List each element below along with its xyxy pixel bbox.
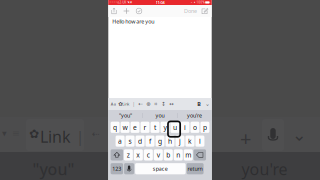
staticText: l: [199, 137, 201, 146]
staticText: ✿: [118, 101, 122, 107]
staticText: +: [240, 125, 251, 152]
staticText: q: [113, 123, 117, 132]
button[interactable]: Add attachment: [122, 6, 131, 15]
staticText: ⌄: [205, 101, 209, 107]
staticText: ✿: [29, 127, 39, 141]
button[interactable]: Shift: [111, 149, 123, 160]
staticText: ▼: [130, 1, 132, 4]
staticText: b: [166, 150, 170, 159]
staticText: j: [179, 137, 181, 146]
button[interactable]: g: [155, 135, 164, 147]
staticText: 11:04: [155, 0, 164, 5]
button[interactable]: y: [160, 122, 169, 133]
staticText: "you": [32, 158, 74, 180]
staticText: ⇠: [92, 128, 100, 139]
button[interactable]: e: [131, 122, 140, 133]
staticText: c: [147, 150, 150, 159]
staticText: ⌗: [154, 101, 157, 107]
staticText: y: [163, 123, 166, 132]
button[interactable]: 123: [111, 163, 123, 174]
button[interactable]: w: [121, 122, 130, 133]
button[interactable]: b: [164, 149, 173, 160]
button[interactable]: "you": [108, 110, 142, 121]
button[interactable]: Delete: [193, 149, 206, 160]
staticText: v: [157, 150, 160, 159]
staticText: u: [173, 123, 177, 132]
staticText: d: [138, 137, 142, 146]
staticText: z: [127, 150, 130, 159]
staticText: n: [176, 150, 180, 159]
button[interactable]: p: [200, 122, 209, 133]
staticText: o: [193, 123, 197, 132]
staticText: Hello how are you: [112, 18, 154, 25]
staticText: Link: [40, 126, 71, 147]
button[interactable]: m: [184, 149, 193, 160]
staticText: p: [203, 123, 207, 132]
staticText: Link: [122, 101, 129, 107]
button[interactable]: u: [170, 122, 179, 133]
button[interactable]: c: [144, 149, 153, 160]
button[interactable]: h: [165, 135, 174, 147]
button[interactable]: z: [124, 149, 133, 160]
button[interactable]: r: [140, 122, 149, 133]
staticText: ⇠: [138, 101, 142, 107]
button[interactable]: l: [195, 135, 204, 147]
button[interactable]: return: [187, 163, 204, 174]
button[interactable]: j: [175, 135, 184, 147]
button[interactable]: Checklist: [134, 6, 143, 15]
staticText: w: [123, 123, 128, 132]
button[interactable]: you: [143, 110, 177, 121]
staticText: i: [184, 123, 186, 132]
staticText: B: [197, 100, 201, 108]
staticText: m: [185, 150, 191, 159]
staticText: ⌁: [191, 1, 193, 4]
button[interactable]: k: [185, 135, 194, 147]
button[interactable]: Done: [184, 6, 197, 15]
staticText: ✦: [194, 1, 196, 4]
button[interactable]: d: [136, 135, 145, 147]
button[interactable]: n: [174, 149, 183, 160]
button[interactable]: v: [154, 149, 163, 160]
staticText: 123: [112, 165, 121, 172]
staticText: ◥: [127, 1, 129, 4]
staticText: t: [154, 123, 156, 132]
staticText: ⌄: [292, 125, 307, 145]
button[interactable]: x: [134, 149, 143, 160]
button[interactable]: o: [190, 122, 199, 133]
staticText: 100%: [196, 1, 204, 4]
button[interactable]: you're: [177, 110, 212, 121]
staticText: you: [155, 112, 164, 119]
staticText: h: [168, 137, 172, 146]
button[interactable]: a: [116, 135, 125, 147]
staticText: e: [133, 123, 137, 132]
staticText: |: [132, 100, 135, 108]
button[interactable]: New note: [200, 6, 209, 15]
staticText: s: [129, 137, 132, 146]
staticText: you're: [241, 158, 287, 180]
staticText: ↕: [161, 101, 165, 107]
button[interactable]: q: [111, 122, 120, 133]
staticText: ▾: [2, 128, 7, 139]
staticText: ⊛: [146, 101, 150, 107]
staticText: x: [136, 150, 140, 159]
staticText: Aa: [111, 101, 116, 107]
staticText: return: [188, 165, 203, 172]
button[interactable]: i: [180, 122, 189, 133]
staticText: "you": [119, 112, 132, 119]
button[interactable]: t: [150, 122, 159, 133]
staticText: k: [188, 137, 192, 146]
staticText: |: [76, 126, 84, 146]
button[interactable]: s: [126, 135, 135, 147]
button[interactable]: Dictate: [124, 163, 134, 174]
staticText: r: [143, 123, 146, 132]
staticText: g: [158, 137, 162, 146]
button[interactable]: Share: [109, 6, 118, 15]
staticText: o2-UK: [117, 1, 126, 4]
button[interactable]: space: [135, 163, 186, 174]
staticText: f: [149, 137, 151, 146]
staticText: ↔: [169, 101, 173, 107]
staticText: you're: [187, 112, 202, 119]
staticText: a: [118, 137, 122, 146]
button[interactable]: f: [145, 135, 154, 147]
